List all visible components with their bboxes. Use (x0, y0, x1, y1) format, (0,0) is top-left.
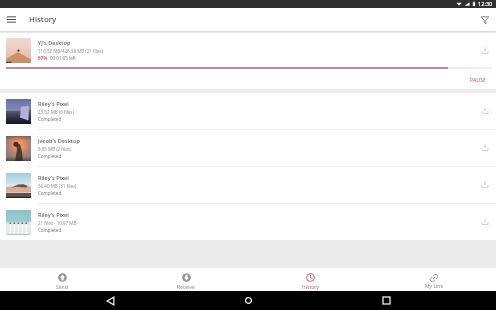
staticText: PAUSE (470, 76, 486, 83)
button[interactable]: Receive (124, 272, 248, 291)
staticText: Riley's Pixel (38, 211, 69, 219)
staticText: Riley's Pixel (38, 174, 69, 182)
staticText: 56.40 MB (31 files) (38, 183, 77, 189)
staticText: 00:01:05 left (50, 55, 76, 61)
button[interactable]: Riley's Pixel (0, 167, 496, 203)
button[interactable]: My Link (372, 272, 496, 291)
staticText: Completed (38, 227, 62, 233)
staticText: Receive (177, 284, 195, 291)
staticText: Completed (38, 190, 62, 196)
button[interactable]: Riley's Pixel (0, 93, 496, 129)
button[interactable]: Download (476, 138, 494, 156)
staticText: 6.05 MB (2 files) (38, 146, 72, 152)
staticText: 116.52 MB/426.38 MB (21 files) (38, 48, 103, 54)
button[interactable]: Recent apps (363, 291, 409, 310)
button[interactable]: Navigation menu (0, 8, 23, 31)
staticText: Riley's Pixel (38, 100, 69, 108)
button[interactable]: Send (0, 272, 124, 291)
staticText: 21 files - 10.97 MB (38, 220, 77, 226)
button[interactable]: Filter (473, 8, 496, 31)
button[interactable]: Jacob's Desktop (0, 130, 496, 166)
button[interactable]: YJ's Desktop (0, 33, 496, 67)
staticText: 67% (38, 55, 48, 61)
staticText: 12:30 (478, 0, 493, 8)
staticText: YJ's Desktop (38, 39, 71, 47)
button[interactable]: Download (476, 41, 494, 59)
staticText: Completed (38, 116, 62, 122)
staticText: Send (56, 284, 68, 291)
button[interactable]: Download (476, 175, 494, 193)
button[interactable]: Riley's Pixel (0, 204, 496, 240)
staticText: History (29, 14, 57, 25)
staticText: 23.52 MB (6 files) (38, 109, 74, 115)
button[interactable]: History (248, 272, 372, 291)
staticText: History (302, 284, 319, 291)
button[interactable]: Back (87, 291, 133, 310)
staticText: Completed (38, 153, 62, 159)
button[interactable]: Download (476, 212, 494, 230)
staticText: Jacob's Desktop (38, 137, 80, 145)
button[interactable]: Home (225, 291, 271, 310)
button[interactable]: PAUSE (463, 72, 493, 87)
staticText: My Link (425, 283, 444, 290)
button[interactable]: Download (476, 101, 494, 119)
